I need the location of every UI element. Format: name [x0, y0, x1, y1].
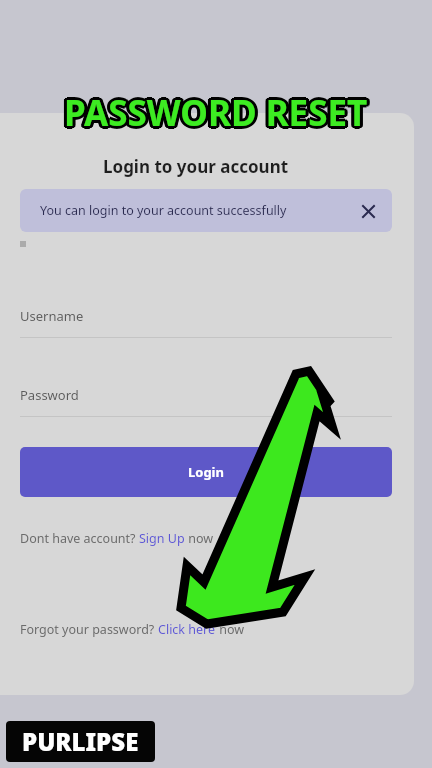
staticText: Sign Up: [139, 530, 185, 547]
staticText: PASSWORD RESET: [66, 87, 370, 135]
staticText: PASSWORD RESET: [67, 88, 371, 136]
staticText: Forgot your password?: [20, 621, 158, 638]
button[interactable]: Sign Up: [139, 530, 185, 547]
staticText: PASSWORD RESET: [61, 89, 365, 137]
button[interactable]: Password: [20, 386, 392, 417]
staticText: PASSWORD RESET: [64, 89, 368, 137]
staticText: Login: [188, 463, 224, 481]
staticText: PURLIPSE: [22, 725, 139, 758]
staticText: PASSWORD RESET: [64, 86, 368, 134]
staticText: PASSWORD RESET: [64, 92, 368, 140]
staticText: PASSWORD RESET: [62, 87, 366, 135]
staticText: PASSWORD RESET: [61, 90, 365, 138]
staticText: Click here: [158, 621, 216, 638]
staticText: now: [216, 621, 245, 638]
button[interactable]: Click here: [158, 621, 216, 638]
staticText: now: [185, 530, 214, 547]
staticText: Dont have account?: [20, 530, 139, 547]
staticText: Username: [20, 307, 84, 325]
staticText: PASSWORD RESET: [66, 91, 370, 139]
staticText: Password: [20, 386, 79, 404]
staticText: PASSWORD RESET: [67, 90, 371, 138]
button[interactable]: Login: [20, 447, 392, 497]
staticText: PASSWORD RESET: [62, 91, 366, 139]
staticText: PASSWORD RESET: [67, 89, 371, 137]
button[interactable]: Username: [20, 307, 392, 338]
staticText: Login to your account: [103, 155, 289, 178]
staticText: You can login to your account successful…: [40, 202, 287, 219]
staticText: PASSWORD RESET: [61, 88, 365, 136]
button[interactable]: Dismiss message: [353, 196, 383, 226]
